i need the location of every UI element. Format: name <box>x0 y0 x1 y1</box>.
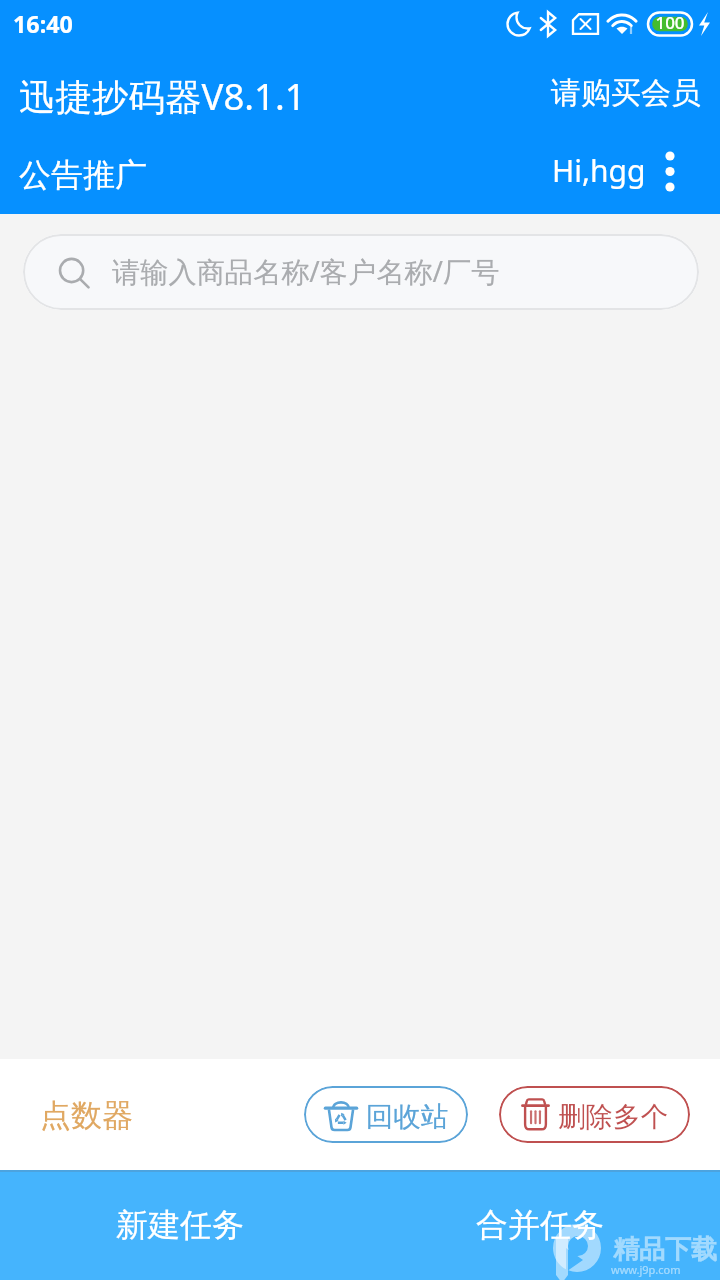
staticText: Hi,hgg <box>552 150 646 191</box>
button[interactable]: More options <box>650 142 690 200</box>
staticText: 100 <box>654 11 686 34</box>
button[interactable]: 新建任务 <box>0 1170 360 1280</box>
staticText: 迅捷抄码器V8.1.1 <box>19 71 306 121</box>
staticText: 16:40 <box>13 8 73 40</box>
staticText: 请购买会员 <box>551 74 701 112</box>
button[interactable]: 点数器 <box>20 1059 155 1170</box>
staticText: 公告推广 <box>19 155 147 195</box>
staticText: 删除多个 <box>558 1100 668 1135</box>
staticText: www.j9p.com <box>611 1262 681 1277</box>
button[interactable]: 请输入商品名称/客户名称/厂号 <box>23 234 699 310</box>
button[interactable]: 删除多个 <box>499 1086 690 1143</box>
button[interactable]: 回收站 <box>304 1086 468 1143</box>
staticText: 合并任务 <box>476 1205 604 1245</box>
staticText: 请输入商品名称/客户名称/厂号 <box>112 252 500 291</box>
staticText: 点数器 <box>40 1096 133 1135</box>
button[interactable]: 合并任务 <box>360 1170 720 1280</box>
staticText: 新建任务 <box>116 1205 244 1245</box>
staticText: 回收站 <box>366 1100 449 1135</box>
staticText: 精品下载 <box>613 1233 717 1266</box>
